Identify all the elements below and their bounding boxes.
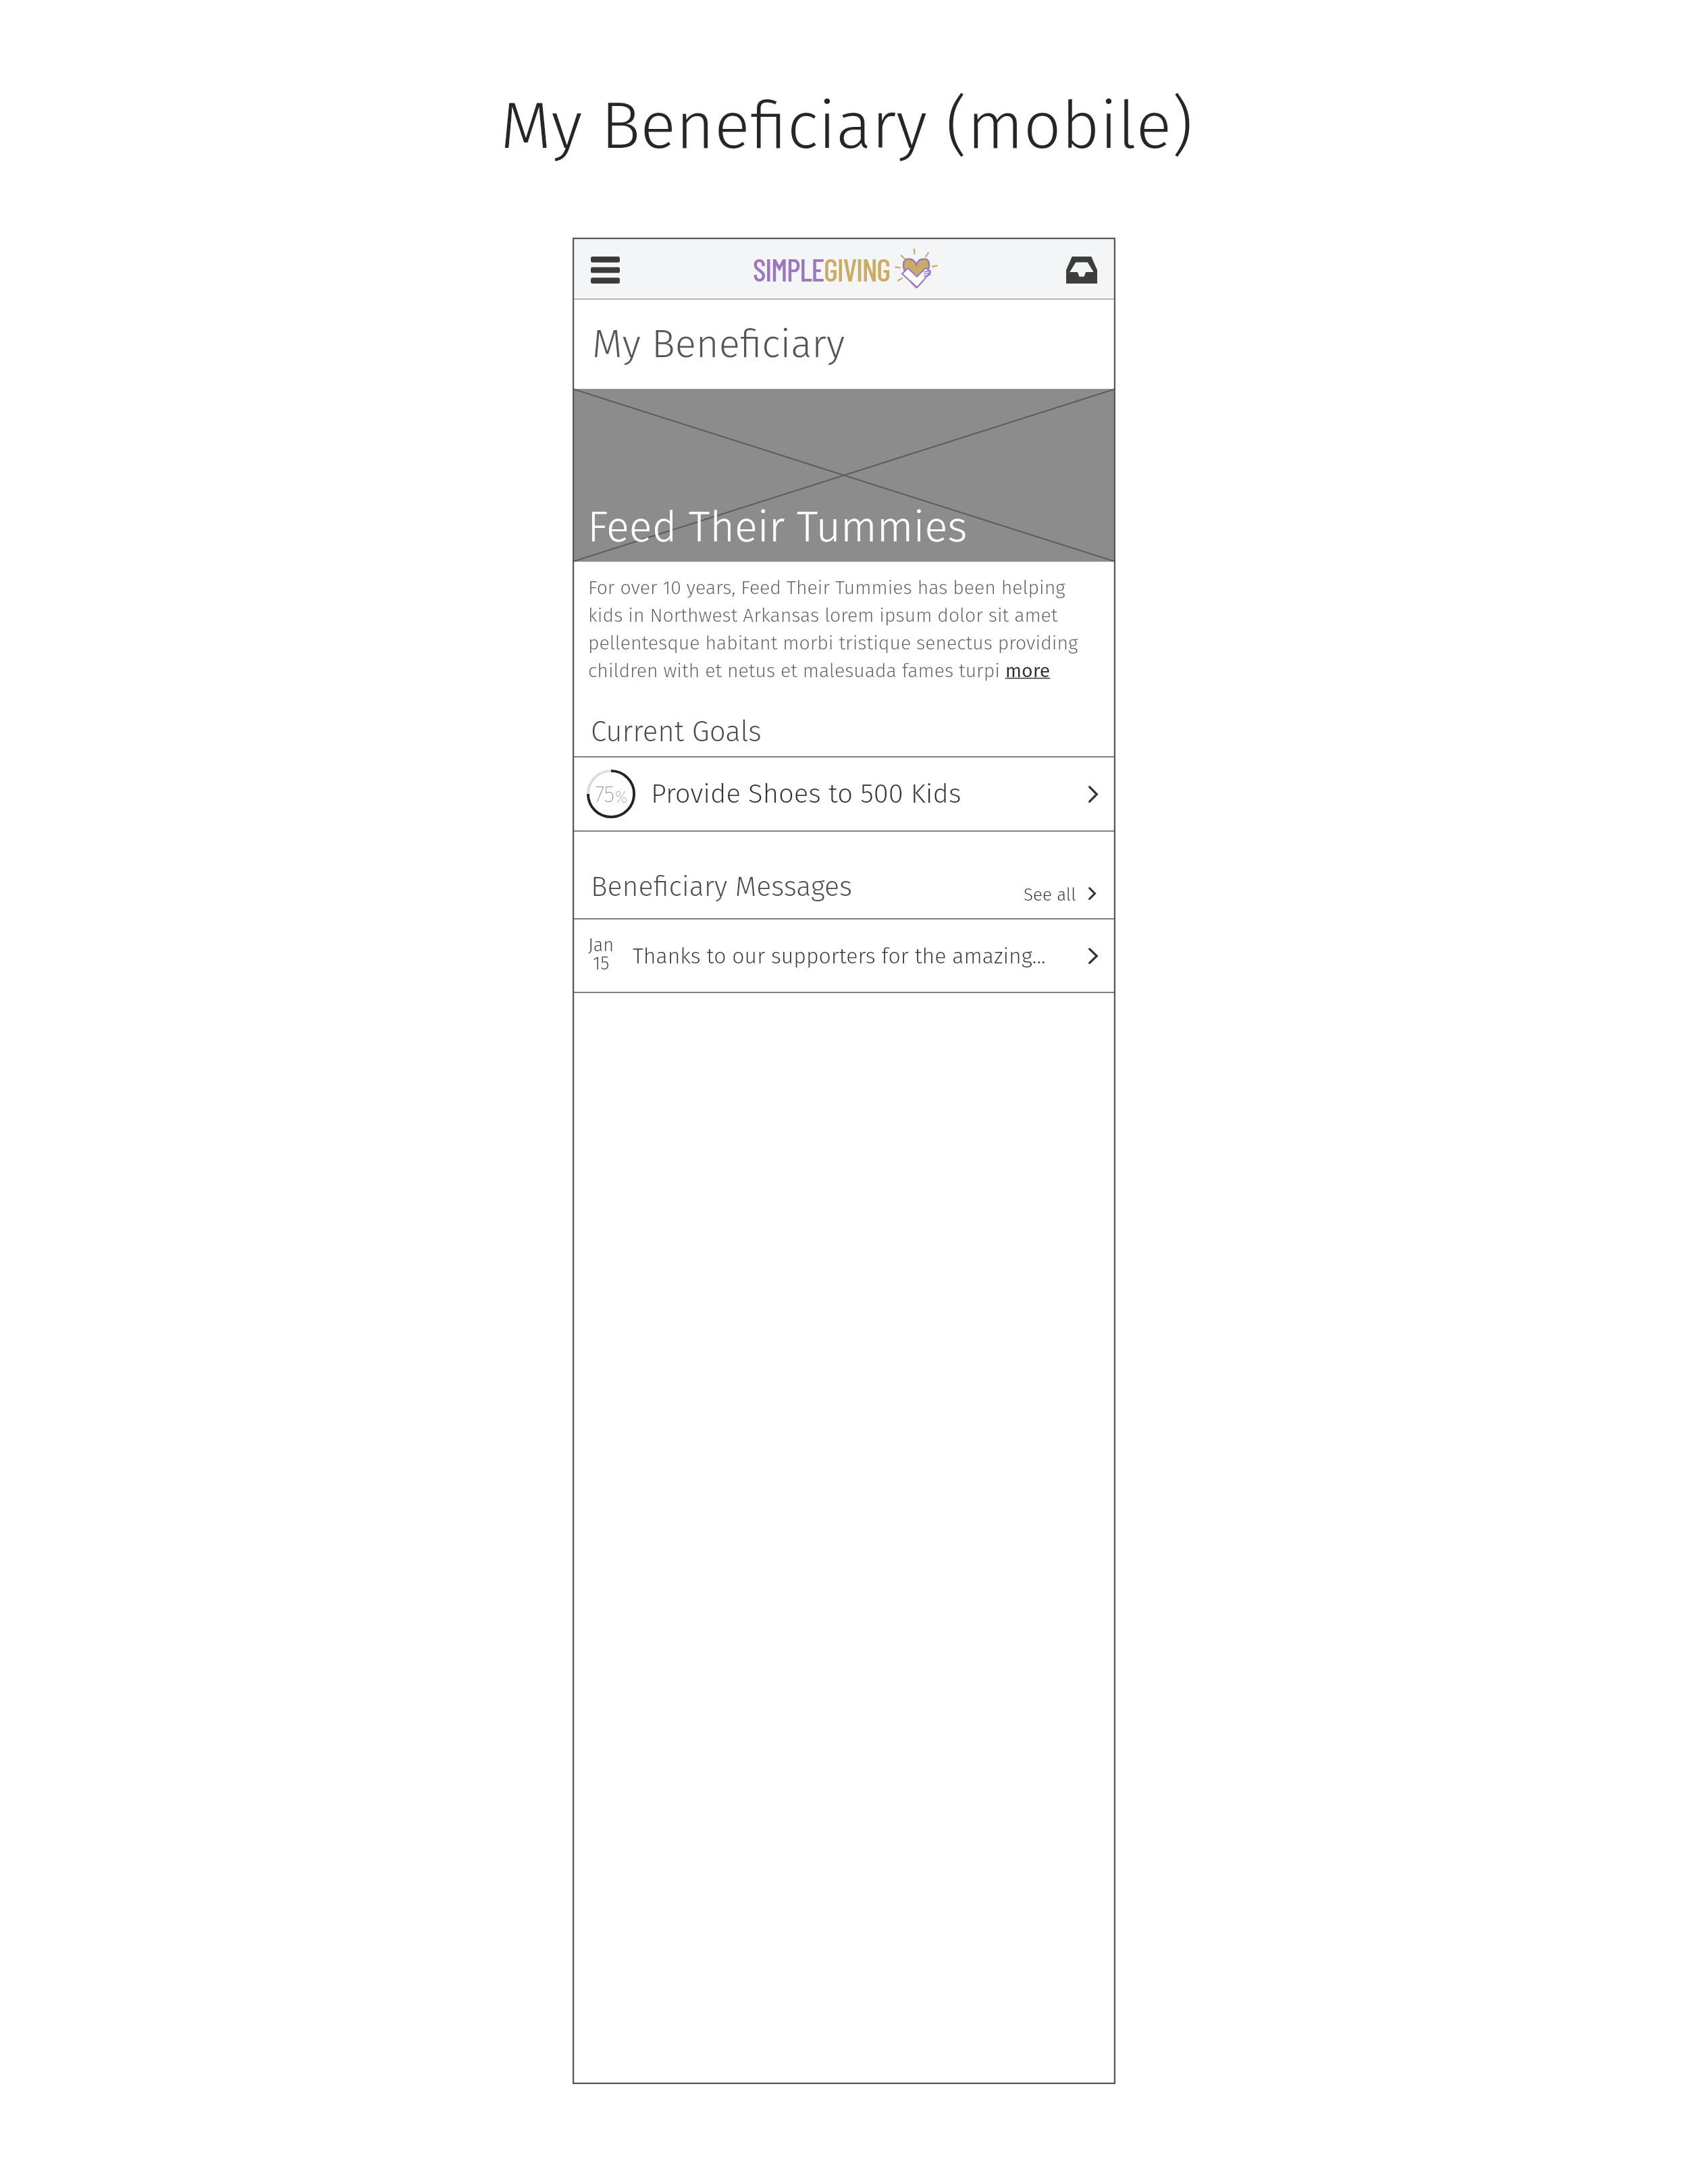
staticText: Feed Their Tummies xyxy=(587,502,968,553)
staticText: Jan xyxy=(588,934,614,956)
staticText: Thanks to our supporters for the amazing… xyxy=(633,943,1046,969)
staticText: % xyxy=(615,788,628,807)
button[interactable]: more xyxy=(983,658,1052,681)
staticText: My Beneficiary xyxy=(592,321,845,368)
staticText: For over 10 years, Feed Their Tummies ha… xyxy=(588,576,1093,682)
staticText: See all xyxy=(1024,884,1076,905)
button[interactable]: 75 xyxy=(573,757,1115,830)
button[interactable]: Jan xyxy=(573,920,1115,992)
button[interactable]: Inbox xyxy=(1061,250,1103,290)
staticText: 15 xyxy=(593,953,610,974)
staticText: 75 xyxy=(595,781,615,808)
button[interactable]: SIMPLEGIVING xyxy=(753,251,935,288)
button[interactable]: Beneficiary Messages xyxy=(573,855,1115,918)
staticText: Provide Shoes to 500 Kids xyxy=(651,778,961,810)
staticText: Current Goals xyxy=(591,715,762,749)
staticText: Beneficiary Messages xyxy=(591,870,852,903)
button[interactable]: Menu xyxy=(584,249,627,291)
staticText: SIMPLEGIVING xyxy=(753,250,890,288)
staticText: My Beneficiary (mobile) xyxy=(500,86,1193,165)
